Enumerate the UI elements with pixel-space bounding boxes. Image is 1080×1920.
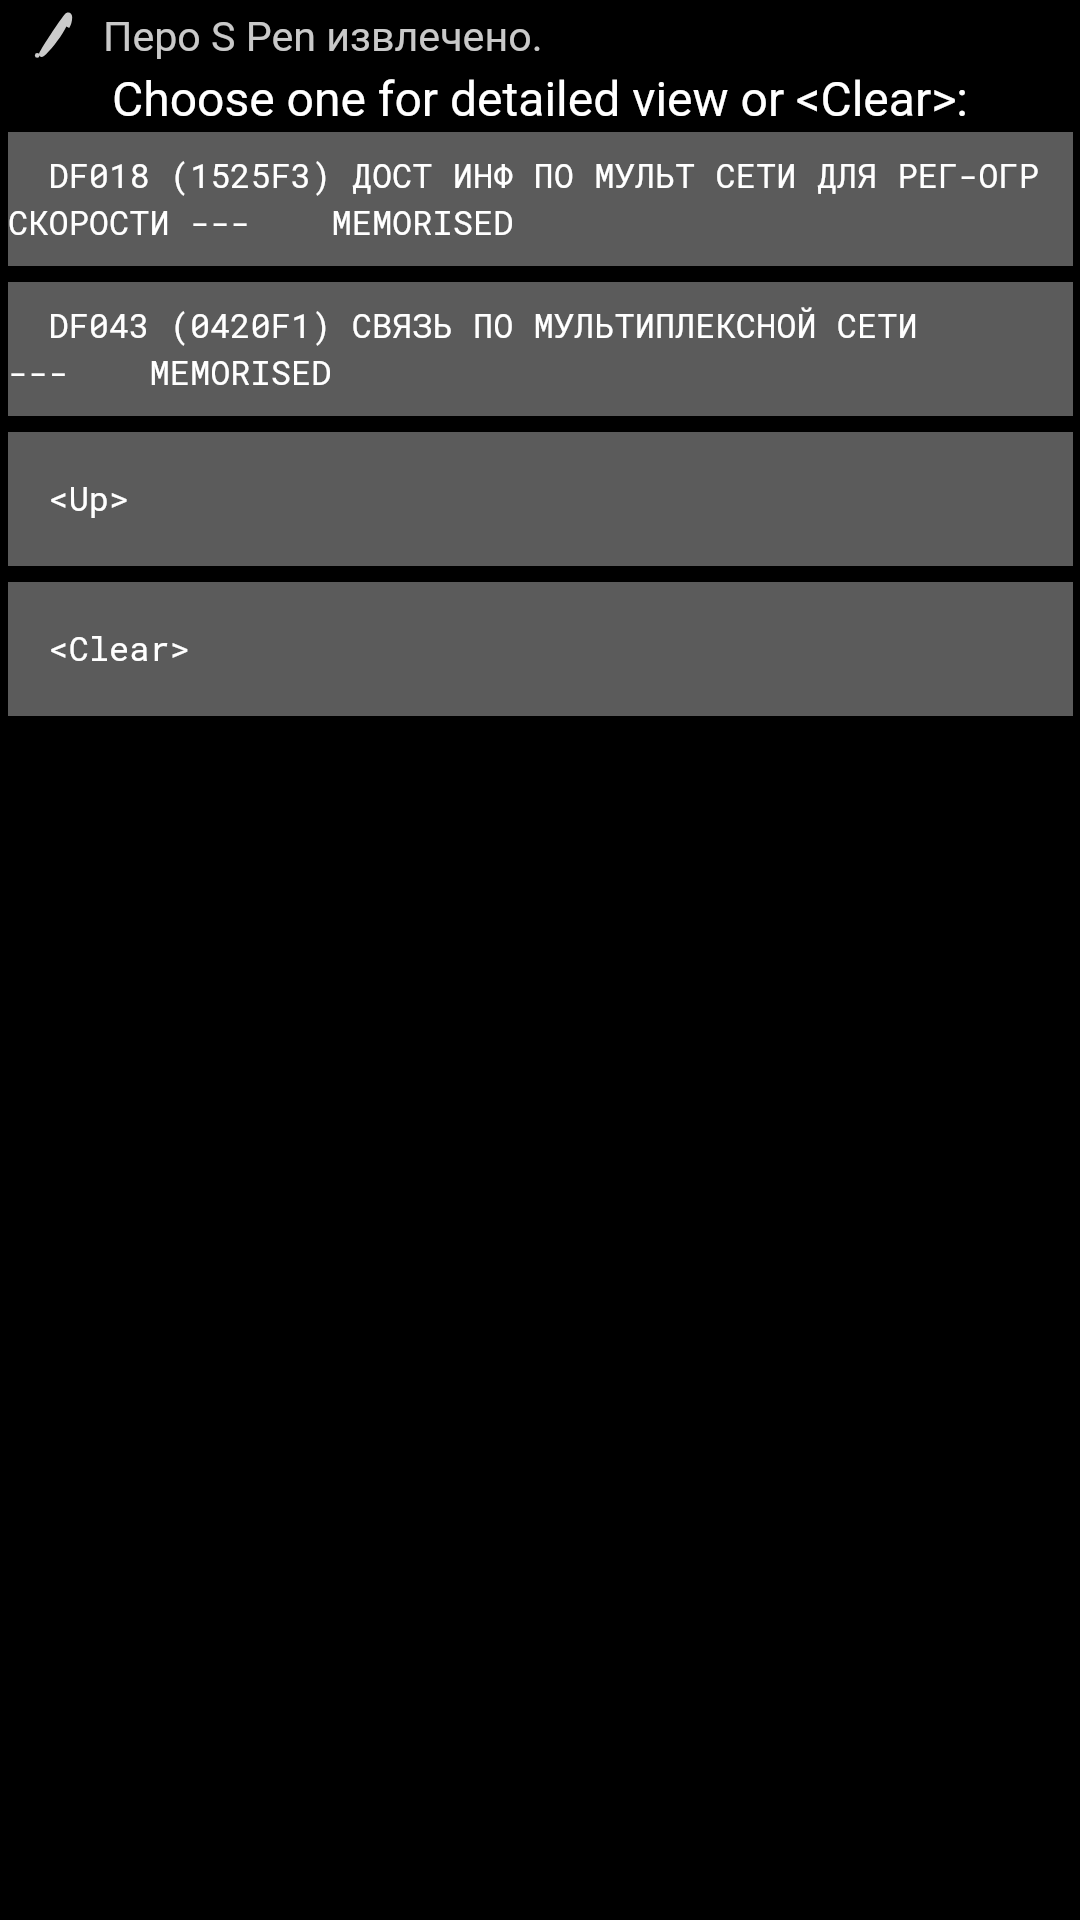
button[interactable]: DF043 (0420F1) СВЯЗЬ ПО МУЛЬТИПЛЕКСНОЙ С… (8, 282, 1073, 416)
staticText: DF018 (1525F3) ДОСТ ИНФ ПО МУЛЬТ СЕТИ ДЛ… (8, 153, 1073, 244)
staticText: DF043 (0420F1) СВЯЗЬ ПО МУЛЬТИПЛЕКСНОЙ С… (8, 303, 1073, 394)
staticText: <Up> (8, 476, 1073, 520)
other: S Pen removed (22, 3, 82, 63)
staticText: <Clear> (8, 626, 1073, 670)
button[interactable]: <Clear> (8, 582, 1073, 716)
staticText: Choose one for detailed view or <Clear>: (112, 71, 968, 127)
button[interactable]: DF018 (1525F3) ДОСТ ИНФ ПО МУЛЬТ СЕТИ ДЛ… (8, 132, 1073, 266)
staticText: Перо S Pen извлечено. (103, 13, 543, 61)
button[interactable]: <Up> (8, 432, 1073, 566)
